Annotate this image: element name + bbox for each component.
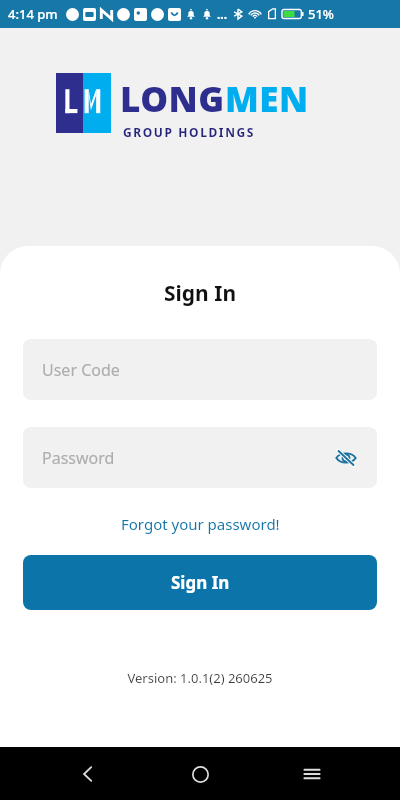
staticText: Sign In bbox=[171, 571, 230, 594]
staticText: User Code bbox=[42, 359, 120, 381]
staticText: Password bbox=[42, 447, 115, 469]
staticText: ... bbox=[217, 6, 228, 22]
button[interactable]: Back bbox=[64, 750, 112, 798]
button[interactable]: Sign In bbox=[23, 555, 377, 610]
button[interactable]: User Code bbox=[23, 339, 377, 400]
button[interactable]: Recent apps bbox=[288, 750, 336, 798]
button[interactable]: Home bbox=[176, 750, 224, 798]
staticText: 4:14 pm bbox=[8, 5, 58, 23]
staticText: MEN bbox=[225, 75, 309, 123]
staticText: Version: 1.0.1(2) 260625 bbox=[0, 669, 400, 687]
staticText: Forgot your password! bbox=[121, 514, 280, 534]
staticText: GROUP HOLDINGS bbox=[123, 124, 255, 140]
staticText: Sign In bbox=[0, 279, 400, 308]
staticText: 51% bbox=[308, 5, 334, 23]
button[interactable]: Password bbox=[23, 427, 377, 488]
staticText: LONG bbox=[120, 75, 225, 123]
button[interactable]: Forgot your password! bbox=[0, 510, 400, 538]
button[interactable]: Show password bbox=[331, 443, 361, 473]
